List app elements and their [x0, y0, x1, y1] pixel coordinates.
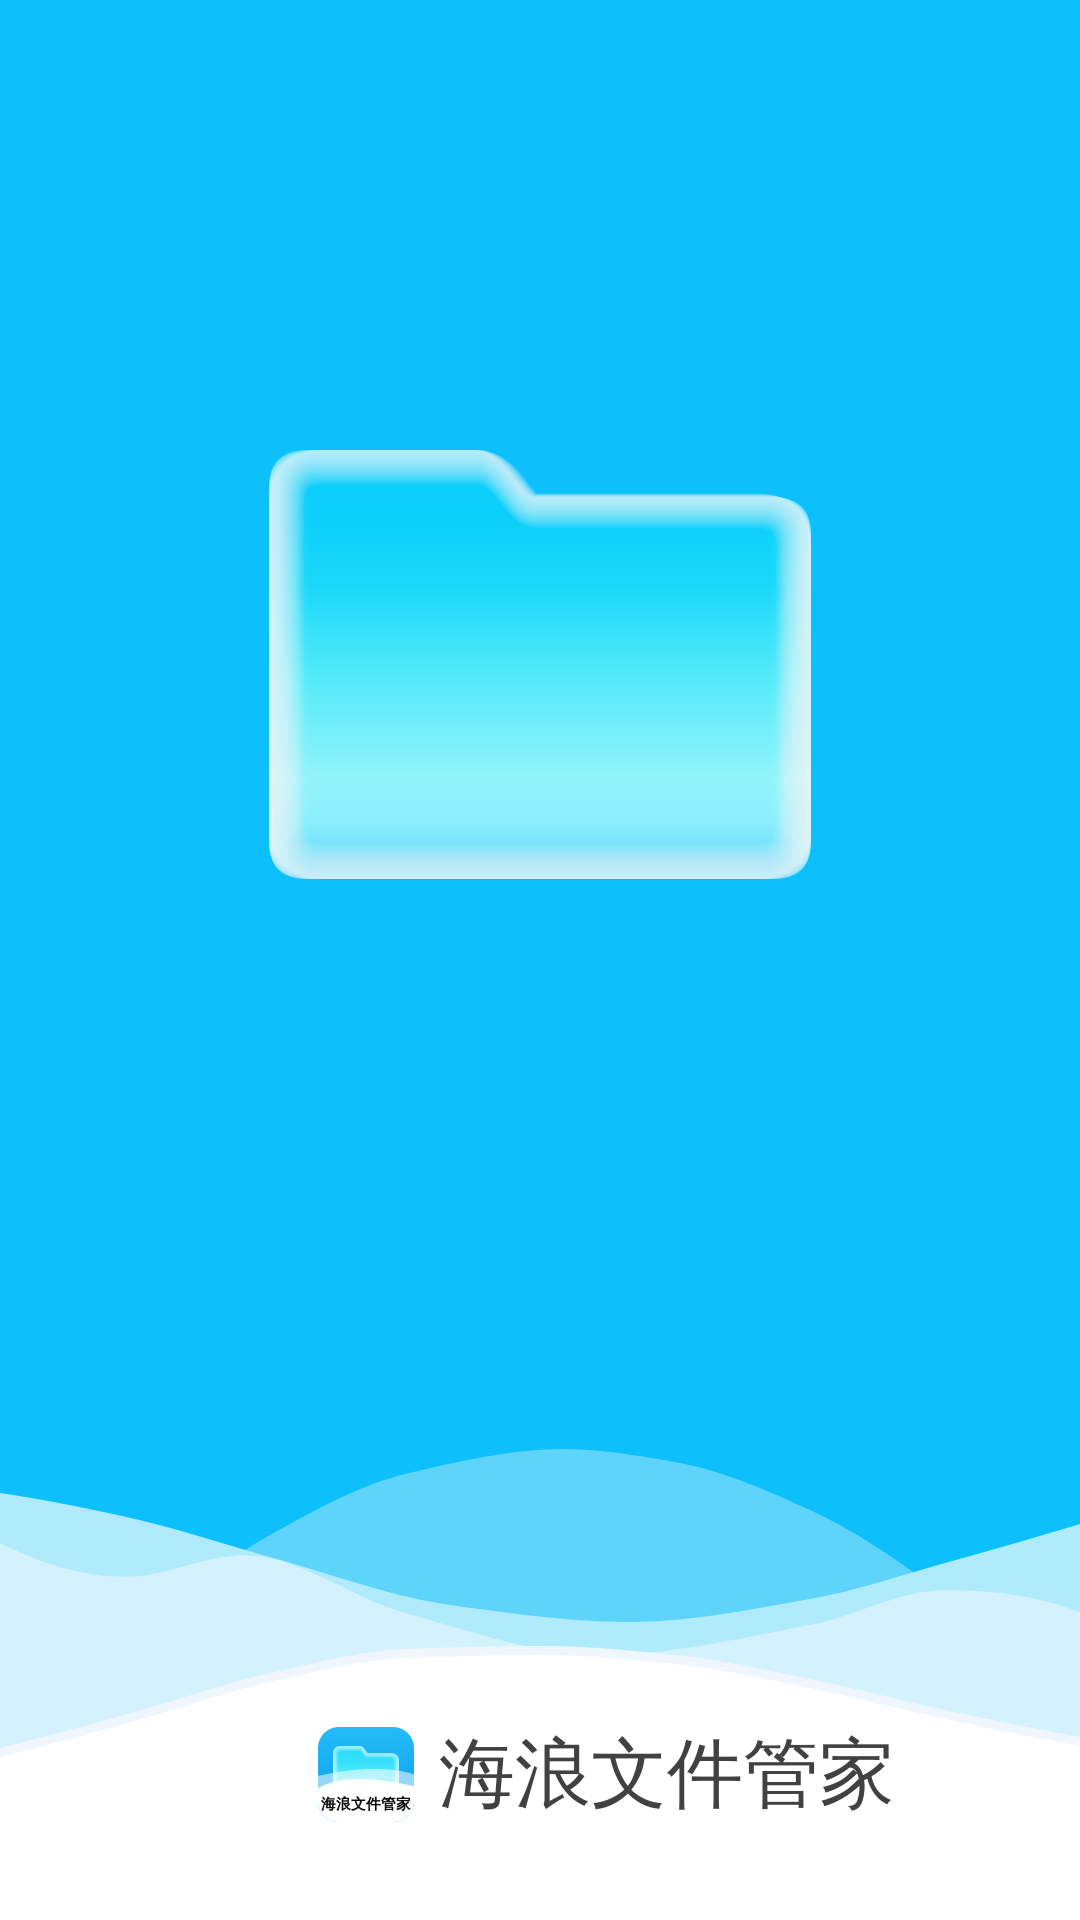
button[interactable]: 海浪文件管家 — [318, 1727, 895, 1822]
staticText: 海浪文件管家 — [439, 1728, 895, 1821]
staticText: 海浪文件管家 — [321, 1795, 411, 1813]
